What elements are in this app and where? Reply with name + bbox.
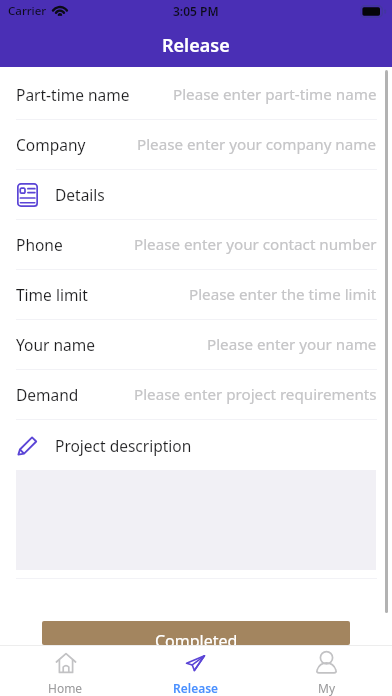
button[interactable]: Release <box>130 646 261 696</box>
staticText: Home <box>48 680 83 696</box>
staticText: Completed <box>155 630 238 645</box>
button[interactable]: Details <box>0 170 392 220</box>
button[interactable]: Demand <box>0 370 392 420</box>
staticText: Demand <box>16 384 79 405</box>
staticText: Details <box>55 184 105 205</box>
staticText: Please enter project requirements <box>134 384 377 405</box>
staticText: Phone <box>16 234 63 255</box>
button[interactable]: My <box>261 646 392 696</box>
button[interactable]: Part-time name <box>0 70 392 120</box>
staticText: 3:05 PM <box>173 3 219 19</box>
staticText: Your name <box>16 334 95 355</box>
staticText: Please enter the time limit <box>189 284 377 305</box>
staticText: My <box>318 680 336 696</box>
staticText: Time limit <box>16 284 88 305</box>
staticText: Please enter your contact number <box>134 234 377 255</box>
staticText: Part-time name <box>16 84 130 105</box>
other: Release <box>186 655 205 671</box>
staticText: Release <box>162 33 230 58</box>
staticText: Please enter part-time name <box>173 84 377 105</box>
button[interactable]: Completed <box>42 621 350 645</box>
button[interactable]: Company <box>0 120 392 170</box>
staticText: Please enter your company name <box>137 134 377 155</box>
button[interactable]: Project description <box>0 420 392 470</box>
button[interactable]: Your name <box>0 320 392 370</box>
button[interactable]: Home <box>0 646 130 696</box>
other: Home <box>56 653 76 673</box>
button[interactable]: Phone <box>0 220 392 270</box>
staticText: Release <box>173 680 219 696</box>
staticText: Company <box>16 134 86 155</box>
button[interactable]: Time limit <box>0 270 392 320</box>
staticText: Please enter your name <box>207 334 377 355</box>
other: My <box>316 652 337 673</box>
staticText: Carrier <box>8 3 47 19</box>
staticText: Project description <box>55 435 192 456</box>
